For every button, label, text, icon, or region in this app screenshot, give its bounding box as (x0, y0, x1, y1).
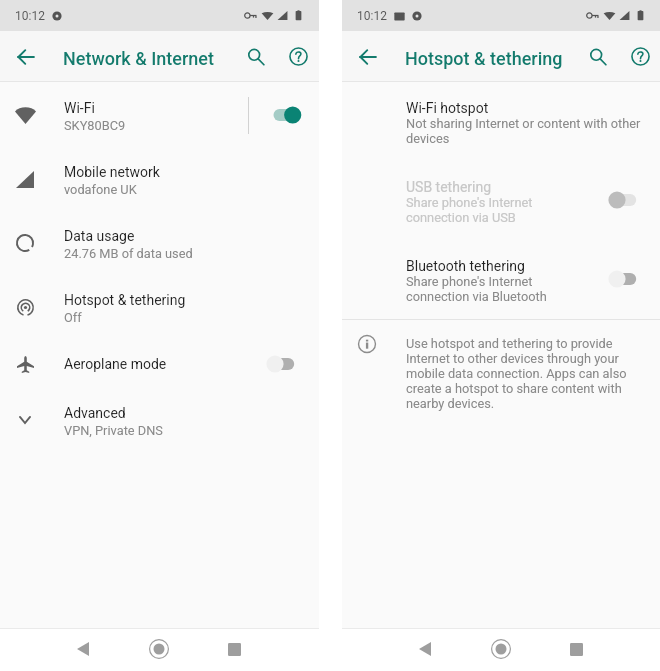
button[interactable]: Help (282, 40, 315, 73)
button[interactable]: Recent apps (560, 633, 592, 665)
staticText: Advanced (64, 405, 126, 421)
staticText: Mobile network (64, 164, 160, 180)
staticText: SKY80BC9 (64, 118, 126, 133)
staticText: 10:12 (15, 9, 45, 23)
staticText: Bluetooth tethering (406, 258, 525, 274)
button[interactable]: Wi-Fi hotspot (342, 84, 660, 163)
button[interactable]: Help (624, 40, 657, 73)
staticText: VPN, Private DNS (64, 423, 163, 438)
staticText: 10:12 (357, 9, 387, 23)
button[interactable]: Home (485, 633, 517, 665)
staticText: 24.76 MB of data used (64, 246, 193, 261)
button[interactable]: Advanced (0, 389, 319, 453)
staticText: Off (64, 310, 82, 325)
button[interactable]: Wi-Fi (0, 84, 319, 148)
button[interactable]: Data usage (0, 212, 319, 276)
button[interactable]: Wi-Fi switch (258, 95, 306, 135)
staticText: vodafone UK (64, 182, 137, 197)
button[interactable]: Back (67, 633, 99, 665)
button[interactable]: Bluetooth tethering switch (600, 259, 648, 299)
button[interactable]: Navigate up (351, 40, 384, 73)
button[interactable]: USB tethering switch (600, 180, 648, 220)
button[interactable]: Hotspot & tethering (0, 276, 319, 340)
button[interactable]: Search (581, 40, 614, 73)
staticText: Hotspot & tethering (64, 292, 186, 308)
staticText: Share phone's Internet connection via Bl… (406, 274, 581, 304)
staticText: Data usage (64, 228, 135, 244)
staticText: Share phone's Internet connection via US… (406, 195, 581, 225)
button[interactable]: Recent apps (218, 633, 250, 665)
staticText: USB tethering (406, 179, 492, 195)
button[interactable]: Bluetooth tethering (342, 242, 660, 321)
staticText: Aeroplane mode (64, 356, 167, 372)
button[interactable]: Aeroplane mode (0, 340, 319, 389)
staticText: Use hotspot and tethering to provide Int… (406, 336, 646, 411)
staticText: Wi-Fi hotspot (406, 100, 489, 116)
button[interactable]: Navigate up (9, 40, 42, 73)
button[interactable]: Aeroplane mode switch (258, 344, 306, 384)
button[interactable]: Mobile network (0, 148, 319, 212)
button[interactable]: USB tethering (342, 163, 660, 242)
button[interactable]: Search (239, 40, 272, 73)
staticText: Hotspot & tethering (405, 48, 563, 69)
staticText: Network & Internet (63, 48, 214, 69)
staticText: Wi-Fi (64, 100, 95, 116)
button[interactable]: Home (143, 633, 175, 665)
button[interactable]: Back (409, 633, 441, 665)
staticText: Not sharing Internet or content with oth… (406, 116, 644, 146)
